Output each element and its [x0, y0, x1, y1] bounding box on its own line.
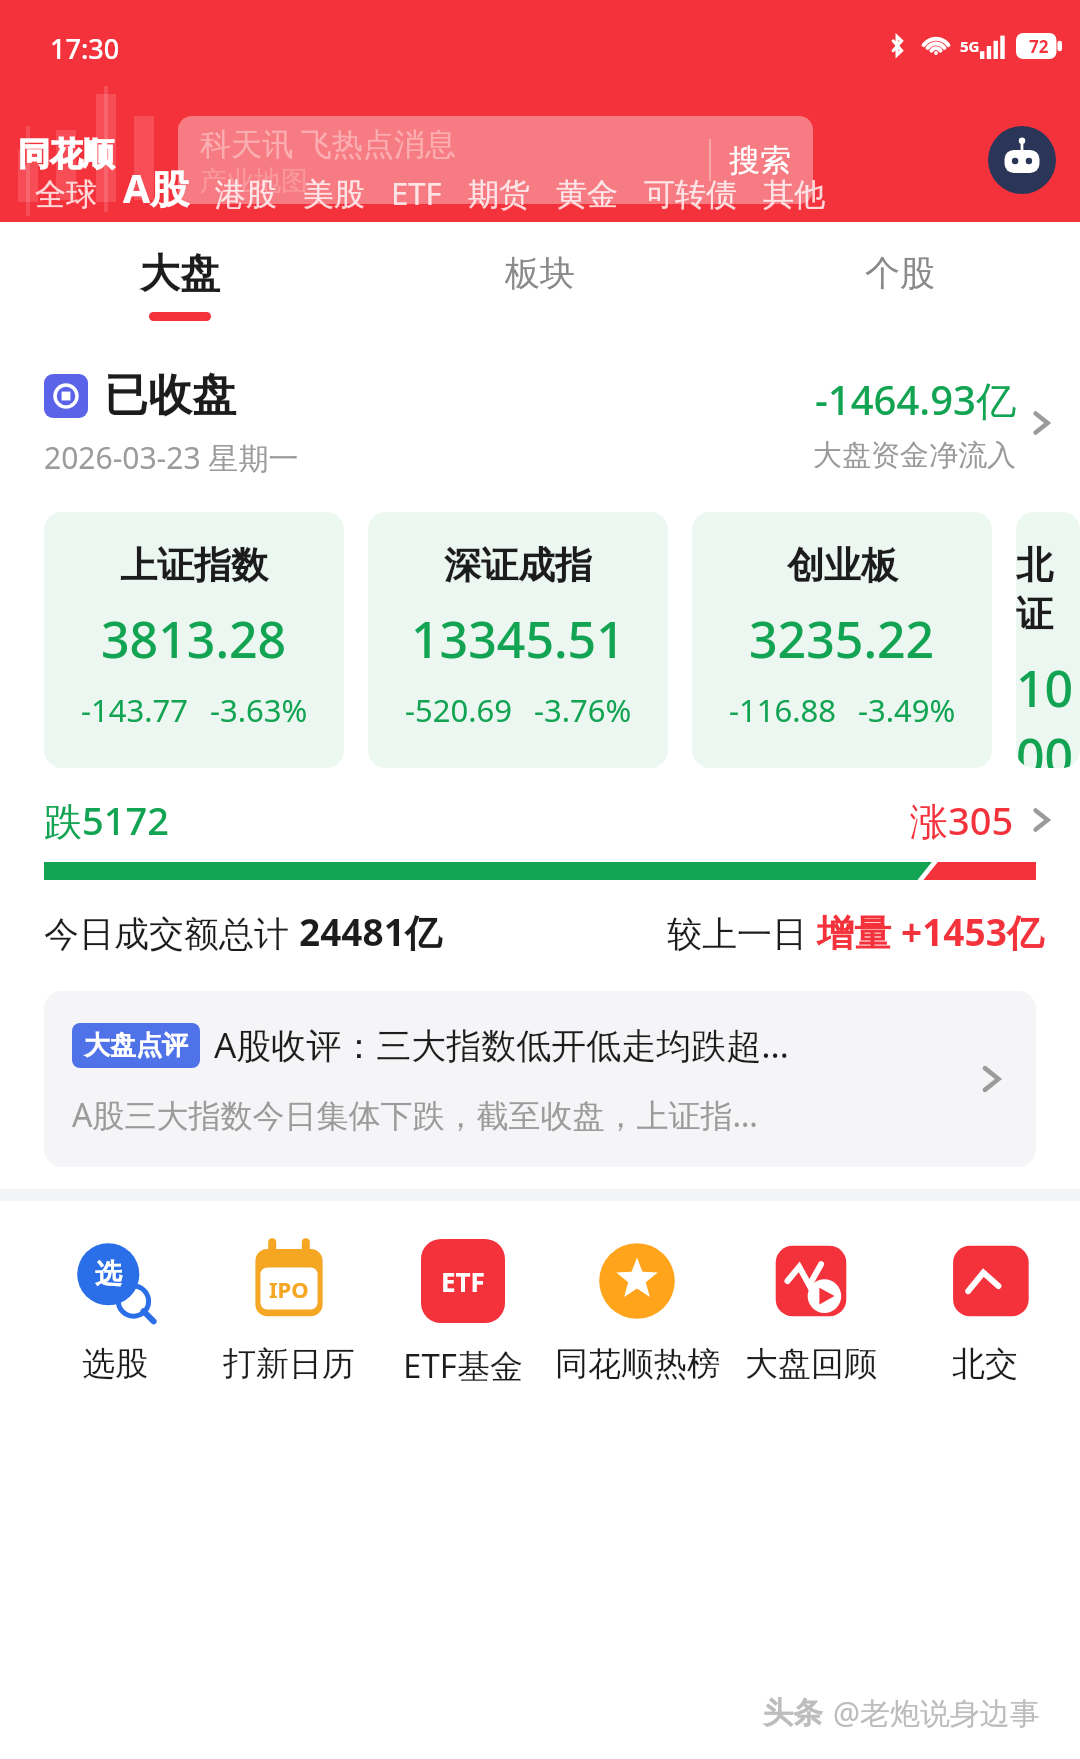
button[interactable]: 北证 [1016, 512, 1080, 768]
button[interactable]: 可转债 [644, 175, 737, 214]
staticText: 打新日历 [223, 1343, 355, 1385]
button[interactable]: 跌5172 [44, 794, 1056, 846]
staticText: ETF [441, 1264, 485, 1299]
staticText: 美股 [303, 175, 365, 214]
staticText: 科天讯 飞热点消息 [200, 122, 457, 164]
staticText: 72 [1029, 35, 1049, 58]
staticText: A股三大指数今日集体下跌，截至收盘，上证指… [72, 1093, 758, 1137]
staticText: 深证成指 [444, 542, 592, 589]
staticText: 全球 [35, 175, 97, 214]
staticText: @老炮说身边事 [833, 1692, 1040, 1733]
staticText: -116.88 [729, 689, 836, 731]
button[interactable]: 个股 [720, 222, 1080, 346]
staticText: +1453亿 [901, 906, 1044, 957]
staticText: 3813.28 [101, 605, 287, 673]
staticText: 选 [95, 1257, 122, 1291]
staticText: 期货 [468, 175, 530, 214]
button[interactable]: 科天讯 飞热点消息 [178, 116, 813, 204]
staticText: 同花顺 [18, 134, 114, 174]
staticText: 已收盘 [104, 368, 236, 423]
staticText: -520.69 [405, 689, 512, 731]
button[interactable]: 创业板 [692, 512, 992, 768]
button[interactable]: 其他 [763, 175, 825, 214]
staticText: -3.76% [534, 689, 632, 731]
staticText: 今日成交额总计 [44, 909, 299, 957]
button[interactable]: 大盘回顾 [724, 1239, 898, 1385]
staticText: 大盘资金净流入 [813, 437, 1016, 474]
staticText: 搜索 [729, 141, 791, 180]
staticText: 个股 [865, 251, 935, 295]
staticText: 较上一日 [667, 909, 817, 957]
button[interactable]: 黄金 [556, 175, 618, 214]
staticText: -3.49% [858, 689, 956, 731]
staticText: 13345.51 [411, 605, 625, 673]
button[interactable]: 板块 [360, 222, 720, 346]
staticText: 选股 [82, 1343, 148, 1385]
staticText: 上证指数 [120, 542, 268, 589]
staticText: 可转债 [644, 175, 737, 214]
staticText: 大盘回顾 [745, 1343, 877, 1385]
staticText: 创业板 [787, 542, 898, 589]
staticText: 2026-03-23 星期一 [44, 437, 299, 478]
staticText: 涨305 [910, 794, 1014, 846]
staticText: 增量 [817, 906, 901, 957]
button[interactable]: 深证成指 [368, 512, 668, 768]
staticText: 24481亿 [299, 906, 442, 957]
staticText: 其他 [763, 175, 825, 214]
staticText: 1000 [1016, 654, 1080, 768]
button[interactable]: 上证指数 [44, 512, 344, 768]
staticText: 黄金 [556, 175, 618, 214]
staticText: A股 [123, 161, 189, 214]
button[interactable]: 全球 [35, 175, 97, 214]
button[interactable]: AI assistant [988, 126, 1056, 194]
staticText: 北证 [1016, 542, 1080, 638]
staticText: 同花顺热榜 [555, 1343, 720, 1385]
button[interactable]: 选 [28, 1239, 202, 1385]
staticText: 头条 [763, 1694, 823, 1732]
staticText: 大盘点评 [84, 1029, 188, 1062]
staticText: 17:30 [50, 30, 120, 67]
staticText: 北交 [952, 1343, 1018, 1385]
staticText: -1464.93亿 [815, 372, 1016, 427]
staticText: -3.63% [210, 689, 308, 731]
staticText: 跌5172 [44, 794, 169, 846]
staticText: 大盘 [140, 248, 220, 298]
staticText: 板块 [505, 251, 575, 295]
button[interactable]: A股 [123, 161, 189, 214]
button[interactable]: ETF [391, 172, 442, 214]
staticText: 产业地图 [200, 164, 308, 198]
staticText: A股收评：三大指数低开低走均跌超… [214, 1021, 790, 1069]
button[interactable]: ETF [376, 1239, 550, 1388]
staticText: 港股 [215, 175, 277, 214]
button[interactable]: 美股 [303, 175, 365, 214]
button[interactable]: 大盘点评 [44, 991, 1036, 1167]
staticText: -143.77 [81, 689, 188, 731]
button[interactable]: 已收盘 [44, 368, 1056, 478]
staticText: ETF [391, 172, 442, 214]
button[interactable]: 同花顺热榜 [550, 1239, 724, 1385]
staticText: IPO [269, 1274, 309, 1304]
button[interactable]: 期货 [468, 175, 530, 214]
staticText: ETF基金 [403, 1343, 523, 1388]
button[interactable]: 北交 [898, 1239, 1072, 1385]
staticText: 5G [960, 36, 980, 56]
button[interactable]: 大盘 [0, 222, 360, 346]
staticText: 3235.22 [749, 605, 935, 673]
button[interactable]: 港股 [215, 175, 277, 214]
button[interactable]: IPO [202, 1239, 376, 1385]
